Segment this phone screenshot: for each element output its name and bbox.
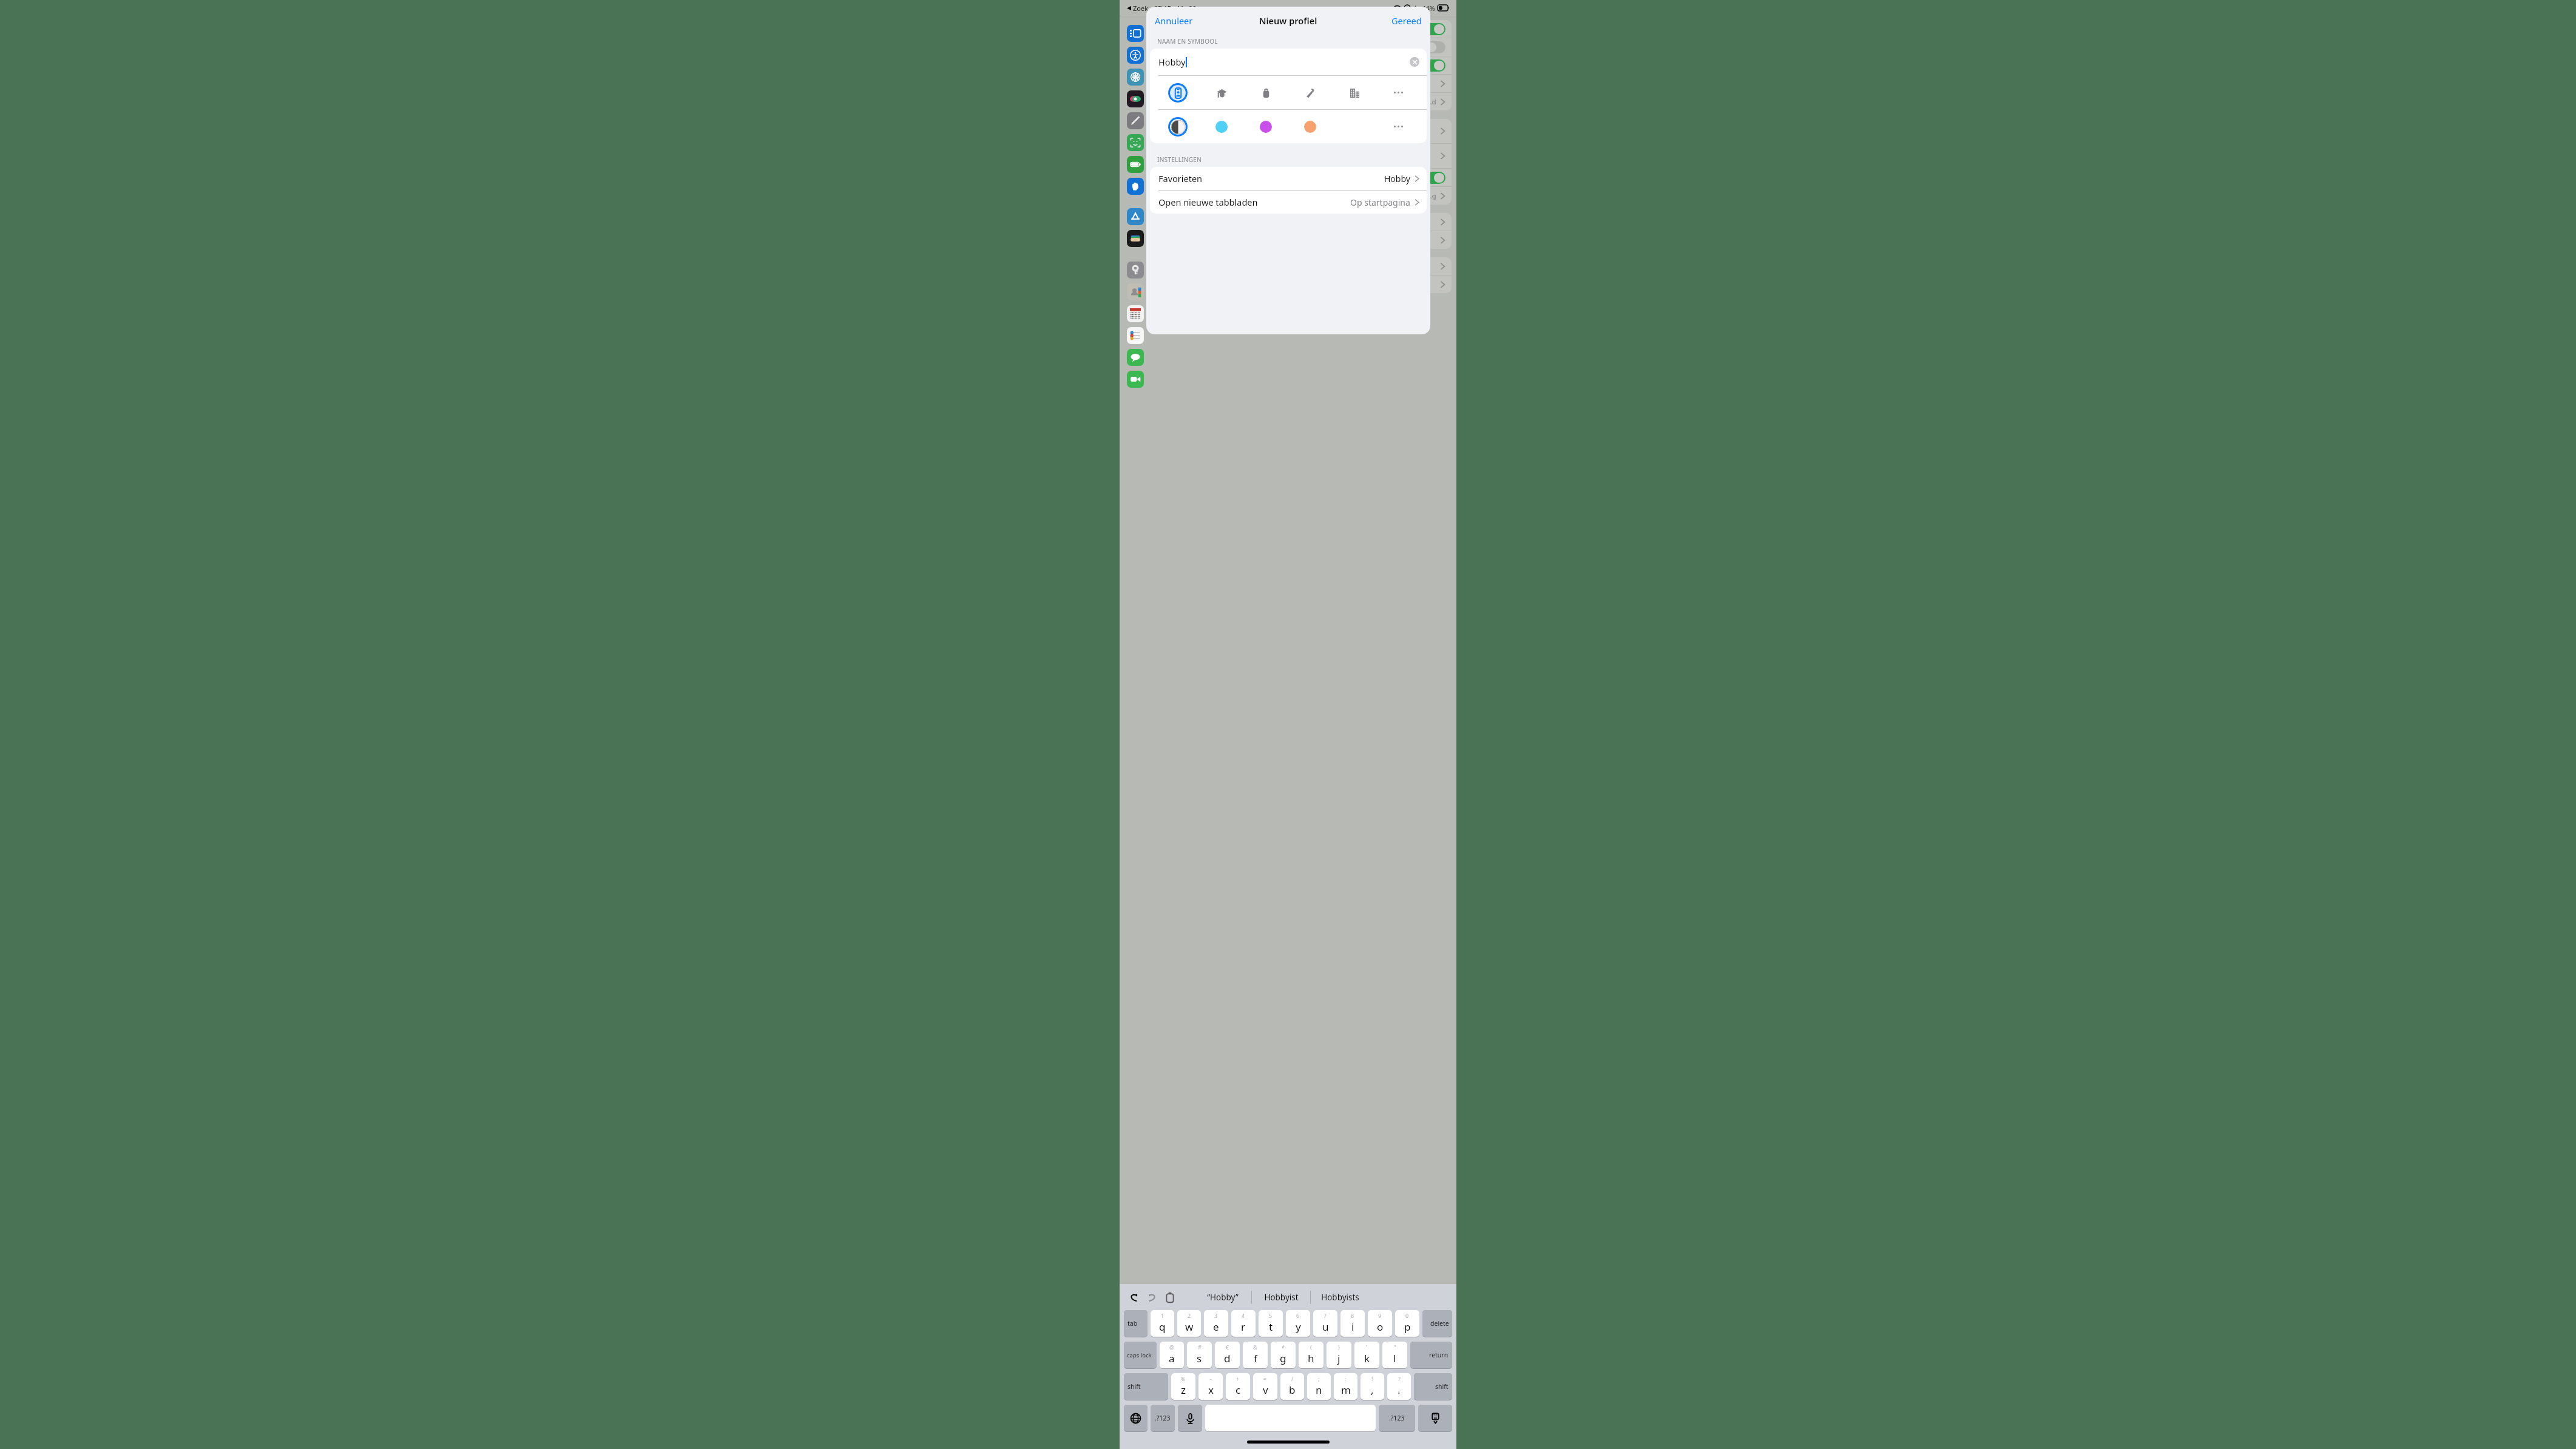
button[interactable]: &	[1243, 1342, 1268, 1370]
staticText: 3	[1214, 1312, 1218, 1319]
button[interactable]: App	[1127, 230, 1144, 247]
staticText: ,	[1371, 1383, 1374, 1397]
button[interactable]: App	[1127, 262, 1144, 279]
button[interactable]: €	[1215, 1342, 1240, 1370]
staticText: '	[1366, 1343, 1368, 1351]
button[interactable]: =	[1253, 1373, 1277, 1402]
button[interactable]: Gereed	[1384, 10, 1429, 32]
button[interactable]: (	[1299, 1342, 1323, 1370]
button[interactable]: Hobbyist	[1252, 1284, 1310, 1310]
staticText: %	[1181, 1375, 1186, 1382]
button[interactable]: Toetsenbord verbergen	[1418, 1405, 1452, 1433]
button[interactable]: Meer kleuren	[1376, 110, 1421, 143]
button[interactable]: Taal wijzigen	[1124, 1405, 1148, 1433]
button[interactable]: 1	[1151, 1310, 1174, 1339]
button[interactable]: %	[1171, 1373, 1195, 1402]
button[interactable]: caps lock	[1124, 1342, 1157, 1370]
button[interactable]: App	[1127, 371, 1144, 388]
button[interactable]: .?123	[1379, 1405, 1415, 1433]
button[interactable]: App	[1127, 327, 1144, 344]
button[interactable]: -	[1198, 1373, 1223, 1402]
button[interactable]: App	[1127, 69, 1144, 86]
button[interactable]: Symbool 1	[1156, 76, 1200, 109]
button[interactable]: App	[1127, 47, 1144, 64]
button[interactable]: shift	[1414, 1373, 1452, 1402]
button[interactable]: #	[1187, 1342, 1212, 1370]
button[interactable]: )	[1327, 1342, 1351, 1370]
staticText: "	[1394, 1343, 1396, 1351]
button[interactable]: Spatie	[1205, 1405, 1376, 1433]
button[interactable]: Symbool 5	[1332, 76, 1376, 109]
button[interactable]: 0	[1395, 1310, 1419, 1339]
button[interactable]: "	[1382, 1342, 1407, 1370]
staticText: /	[1291, 1375, 1294, 1382]
button[interactable]: shift	[1124, 1373, 1168, 1402]
staticText: Zoek	[1133, 4, 1149, 13]
button[interactable]: 8	[1340, 1310, 1365, 1339]
button[interactable]: /	[1280, 1373, 1304, 1402]
button[interactable]: return	[1410, 1342, 1452, 1370]
button[interactable]: Symbool 4	[1288, 76, 1332, 109]
button[interactable]: App	[1127, 25, 1144, 42]
button[interactable]: Open nieuwe tabbladen	[1150, 191, 1427, 214]
button[interactable]: @	[1160, 1342, 1184, 1370]
button[interactable]: Symbool 2	[1200, 76, 1243, 109]
button[interactable]: 6	[1286, 1310, 1310, 1339]
staticText: Nieuw profiel	[1259, 15, 1317, 27]
button[interactable]: Symbool 3	[1243, 76, 1288, 109]
button[interactable]: App	[1127, 178, 1144, 195]
button[interactable]: Wis tekst	[1410, 57, 1419, 67]
staticText: tab	[1127, 1319, 1138, 1328]
button[interactable]: Kleur	[1243, 110, 1288, 143]
button[interactable]: Kleur	[1288, 110, 1332, 143]
button[interactable]: .?123	[1151, 1405, 1175, 1433]
button[interactable]: '	[1354, 1342, 1379, 1370]
staticText: e	[1213, 1320, 1219, 1334]
staticText: …d	[1427, 97, 1436, 106]
staticText: Hobby	[1384, 173, 1410, 184]
button[interactable]: ?	[1387, 1373, 1411, 1402]
button[interactable]: App	[1127, 134, 1144, 151]
button[interactable]: Hobby	[1150, 49, 1427, 75]
button[interactable]: App	[1127, 112, 1144, 129]
button[interactable]: App	[1127, 283, 1144, 300]
button[interactable]: +	[1226, 1373, 1250, 1402]
button[interactable]: App	[1127, 208, 1144, 225]
button[interactable]: Opnieuw	[1144, 1289, 1160, 1305]
button[interactable]: 2	[1177, 1310, 1201, 1339]
button[interactable]: 7	[1313, 1310, 1337, 1339]
button[interactable]: ;	[1307, 1373, 1331, 1402]
button[interactable]: !	[1361, 1373, 1384, 1402]
button[interactable]: Meer symbolen	[1376, 76, 1421, 109]
button[interactable]: App	[1127, 305, 1144, 322]
button[interactable]: Kleur	[1200, 110, 1243, 143]
staticText: ;	[1318, 1375, 1320, 1382]
button[interactable]: Automatische kleur	[1156, 110, 1200, 143]
staticText: -	[1210, 1375, 1212, 1382]
button[interactable]: Dicteren	[1178, 1405, 1202, 1433]
button[interactable]: :	[1334, 1373, 1357, 1402]
button[interactable]: App	[1127, 349, 1144, 366]
staticText: caps lock	[1127, 1351, 1152, 1359]
button[interactable]: Annuleer	[1148, 10, 1200, 32]
button[interactable]: 9	[1368, 1310, 1392, 1339]
staticText: 0	[1405, 1312, 1409, 1319]
staticText: €	[1226, 1343, 1229, 1351]
button[interactable]: Hobbyists	[1311, 1284, 1369, 1310]
button[interactable]: Plakken	[1162, 1289, 1178, 1305]
button[interactable]: 3	[1204, 1310, 1228, 1339]
button[interactable]: Ongedaan maken	[1126, 1289, 1141, 1305]
button[interactable]: App	[1127, 90, 1144, 107]
staticText: Ma 20 nov	[1177, 4, 1210, 13]
button[interactable]: Favorieten	[1150, 167, 1427, 190]
button[interactable]: tab	[1124, 1310, 1148, 1339]
button[interactable]: “Hobby”	[1194, 1284, 1251, 1310]
button[interactable]: delete	[1422, 1310, 1452, 1339]
staticText: .?123	[1389, 1414, 1405, 1422]
button[interactable]: 4	[1231, 1310, 1256, 1339]
staticText: &	[1253, 1343, 1257, 1351]
button[interactable]: 5	[1259, 1310, 1283, 1339]
button[interactable]: App	[1127, 156, 1144, 173]
button[interactable]: *	[1271, 1342, 1296, 1370]
staticText: “Hobby”	[1207, 1292, 1239, 1303]
